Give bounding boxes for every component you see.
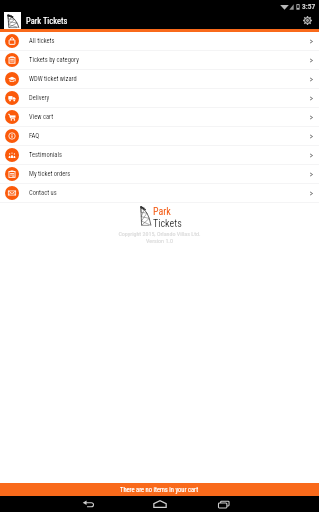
- staticText: 3:57: [302, 2, 316, 11]
- staticText: FAQ: [29, 132, 40, 140]
- button[interactable]: Home: [144, 496, 176, 512]
- button[interactable]: WDW ticket wizard: [0, 70, 319, 88]
- button[interactable]: View cart: [0, 108, 319, 126]
- button[interactable]: My ticket orders: [0, 165, 319, 183]
- staticText: WDW ticket wizard: [29, 75, 77, 83]
- button[interactable]: There are no items in your cart: [0, 483, 319, 496]
- staticText: Park Tickets: [26, 16, 68, 26]
- button[interactable]: Testimonials: [0, 146, 319, 164]
- staticText: Testimonials: [29, 151, 62, 159]
- button[interactable]: Contact us: [0, 184, 319, 202]
- staticText: Copyright 2015, Orlando Villas Ltd.: [118, 230, 201, 237]
- staticText: There are no items in your cart: [120, 486, 199, 494]
- button[interactable]: All tickets: [0, 32, 319, 50]
- staticText: Contact us: [29, 189, 57, 197]
- button[interactable]: Delivery: [0, 89, 319, 107]
- button[interactable]: Tickets by category: [0, 51, 319, 69]
- staticText: My ticket orders: [29, 170, 71, 178]
- button[interactable]: Settings: [299, 12, 316, 29]
- button[interactable]: Back: [72, 496, 104, 512]
- button[interactable]: FAQ: [0, 127, 319, 145]
- staticText: View cart: [29, 113, 54, 121]
- staticText: Version 1.0: [146, 237, 173, 244]
- staticText: Tickets by category: [29, 56, 79, 64]
- button[interactable]: Park Tickets home: [4, 12, 21, 29]
- button[interactable]: Recent apps: [208, 496, 240, 512]
- staticText: All tickets: [29, 37, 55, 45]
- staticText: Tickets: [153, 218, 182, 230]
- staticText: Delivery: [29, 94, 50, 102]
- staticText: Park: [153, 206, 171, 218]
